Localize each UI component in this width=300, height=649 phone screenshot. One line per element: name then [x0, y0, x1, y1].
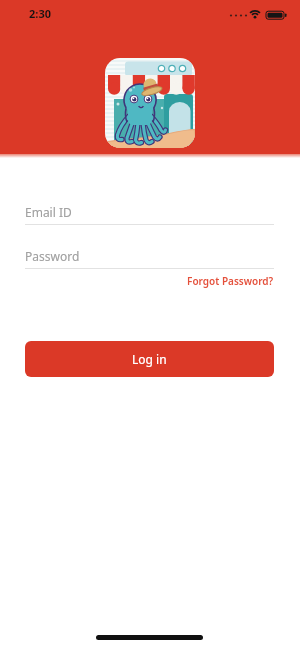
button[interactable]: Log in: [25, 341, 274, 377]
staticText: Password: [25, 248, 80, 264]
staticText: 2:30: [29, 6, 51, 21]
staticText: Email ID: [25, 204, 72, 220]
button[interactable]: Forgot Password?: [187, 274, 274, 288]
button[interactable]: Password: [25, 242, 274, 269]
staticText: Log in: [132, 351, 167, 367]
button[interactable]: Email ID: [25, 198, 274, 225]
